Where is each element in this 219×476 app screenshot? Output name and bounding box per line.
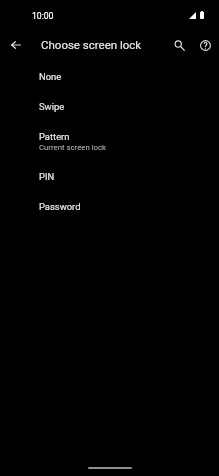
staticText: Swipe [39,101,65,112]
button[interactable]: Pattern [0,121,219,161]
staticText: Pattern [39,131,70,142]
staticText: PIN [39,171,55,182]
button[interactable]: Help [193,33,217,57]
staticText: Password [39,201,81,212]
staticText: Current screen lock [39,143,107,152]
button[interactable]: None [0,61,219,91]
staticText: None [39,71,62,82]
button[interactable]: PIN [0,161,219,191]
staticText: ? [203,41,208,51]
staticText: Choose screen lock [41,38,142,51]
button[interactable]: Password [0,191,219,221]
button[interactable]: Swipe [0,91,219,121]
staticText: 10:00 [32,11,54,21]
button[interactable]: Back [4,33,28,57]
button[interactable]: Search [167,33,191,57]
